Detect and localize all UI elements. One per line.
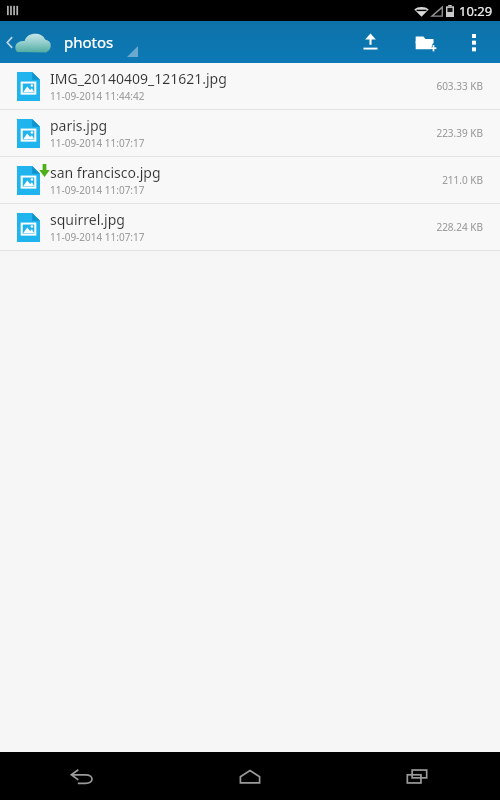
button[interactable]: Back (0, 752, 166, 800)
staticText: squirrel.jpg (50, 210, 125, 229)
staticText: paris.jpg (50, 116, 108, 135)
staticText: 10:29 (459, 2, 493, 20)
staticText: 11-09-2014 11:44:42 (50, 89, 145, 103)
staticText: 603.33 KB (436, 79, 483, 93)
staticText: 228.24 KB (436, 220, 483, 234)
staticText: IMG_20140409_121621.jpg (50, 69, 227, 88)
staticText: 223.39 KB (436, 126, 483, 140)
button[interactable]: Upload (342, 21, 398, 63)
button[interactable]: Navigate up (0, 21, 54, 63)
staticText: 11-09-2014 11:07:17 (50, 136, 145, 150)
button[interactable]: More options (454, 21, 494, 63)
button[interactable]: Recent apps (333, 752, 500, 800)
button[interactable]: san francisco.jpg (0, 157, 500, 203)
button[interactable]: Home (166, 752, 333, 800)
staticText: photos (64, 32, 114, 52)
button[interactable]: New folder (398, 21, 454, 63)
button[interactable]: paris.jpg (0, 110, 500, 156)
staticText: san francisco.jpg (50, 163, 161, 182)
staticText: 11-09-2014 11:07:17 (50, 183, 145, 197)
staticText: 211.0 KB (442, 173, 483, 187)
button[interactable]: squirrel.jpg (0, 204, 500, 250)
staticText: 11-09-2014 11:07:17 (50, 230, 145, 244)
button[interactable]: IMG_20140409_121621.jpg (0, 63, 500, 109)
